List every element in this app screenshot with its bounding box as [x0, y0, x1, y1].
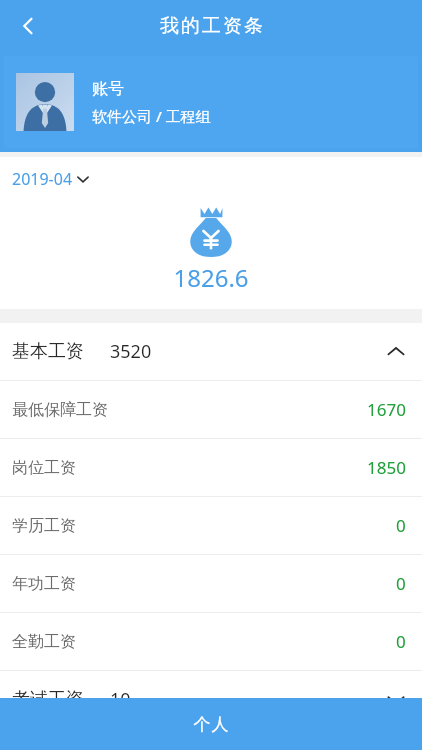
staticText: 我的工资条 [159, 14, 264, 38]
button[interactable]: 个人 [0, 698, 422, 750]
staticText: 学历工资 [12, 516, 76, 536]
button[interactable]: 学历工资 [0, 497, 422, 554]
staticText: 1850 [367, 456, 406, 479]
button[interactable]: 2019-04 [12, 164, 99, 194]
staticText: 3520 [110, 339, 152, 364]
staticText: 账号 [92, 79, 124, 99]
staticText: 1670 [367, 398, 406, 421]
staticText: 岗位工资 [12, 458, 76, 478]
staticText: 最低保障工资 [12, 400, 108, 420]
button[interactable]: 岗位工资 [0, 439, 422, 496]
button[interactable]: 年功工资 [0, 555, 422, 612]
staticText: 个人 [193, 714, 229, 735]
staticText: 年功工资 [12, 574, 76, 594]
staticText: 0 [396, 514, 406, 537]
button[interactable]: 基本工资 [0, 323, 422, 380]
button[interactable]: 账号 [4, 56, 418, 148]
staticText: 基本工资 [12, 340, 84, 363]
staticText: 0 [396, 630, 406, 653]
staticText: 1826.6 [173, 261, 249, 294]
staticText: 软件公司 / 工程组 [92, 106, 211, 126]
staticText: 10 [110, 687, 131, 712]
staticText: 0 [396, 572, 406, 595]
button[interactable]: 考试工资 [0, 671, 422, 728]
staticText: 2019-04 [12, 168, 73, 190]
button[interactable]: Back [6, 4, 50, 48]
staticText: 全勤工资 [12, 632, 76, 652]
staticText: 考试工资 [12, 688, 84, 711]
button[interactable]: 全勤工资 [0, 613, 422, 670]
button[interactable]: 最低保障工资 [0, 381, 422, 438]
